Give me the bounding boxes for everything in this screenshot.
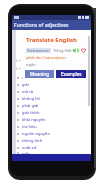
- button[interactable]: Vietnamese: [23, 47, 88, 54]
- staticText: giải thích: [22, 110, 40, 115]
- staticText: nguồn nguyên: [22, 131, 50, 136]
- staticText: Translate English into...: [26, 36, 88, 44]
- staticText: xuất xứ: [22, 145, 37, 150]
- staticText: mô tả: [22, 89, 34, 94]
- button[interactable]: (n): [12, 64, 91, 72]
- staticText: Tiếng Việt: [53, 48, 72, 53]
- button[interactable]: Play pronunciation: [81, 65, 88, 72]
- button[interactable]: Add to favourites: [80, 47, 87, 54]
- staticText: tính từ miêu tả: [23, 66, 51, 71]
- button[interactable]: khái nguyên: [12, 116, 91, 123]
- staticText: không lời: [22, 96, 40, 101]
- button[interactable]: (n): [12, 56, 91, 64]
- button[interactable]: phải giải: [12, 102, 91, 109]
- staticText: (n): [16, 66, 21, 71]
- button[interactable]: mẫu: [12, 151, 91, 154]
- staticText: khái nguyên: [22, 117, 46, 122]
- staticText: mẫu: [22, 151, 31, 154]
- button[interactable]: nghĩa của từ: [12, 74, 91, 81]
- staticText: Meaning: [30, 71, 49, 77]
- staticText: tính từ miêu tả: [23, 58, 51, 63]
- button[interactable]: mô tả: [12, 88, 91, 95]
- button[interactable]: Functions of adjectives: [12, 20, 91, 30]
- staticText: phiên âm / transcription: [26, 55, 66, 60]
- button[interactable]: giải thích: [12, 109, 91, 116]
- button[interactable]: Examples: [56, 70, 86, 78]
- button[interactable]: thông tính: [12, 137, 91, 144]
- staticText: (n): [16, 58, 21, 63]
- staticText: thông tính: [22, 138, 43, 143]
- staticText: nghĩa của từ: [22, 75, 47, 80]
- button[interactable]: nguồn nguyên: [12, 130, 91, 137]
- button[interactable]: Play pronunciation: [72, 47, 79, 54]
- staticText: tra hiểu: [22, 124, 37, 129]
- staticText: phải giải: [22, 103, 39, 108]
- button[interactable]: không lời: [12, 95, 91, 102]
- staticText: Vietnamese: [27, 48, 50, 53]
- staticText: Functions of adjectives: [14, 22, 69, 29]
- button[interactable]: giải: [12, 81, 91, 88]
- button[interactable]: tra hiểu: [12, 123, 91, 130]
- staticText: giải: [22, 82, 29, 87]
- button[interactable]: Meaning: [25, 70, 54, 78]
- staticText: ngôn: [26, 62, 36, 67]
- staticText: Examples: [61, 71, 82, 77]
- button[interactable]: xuất xứ: [12, 144, 91, 151]
